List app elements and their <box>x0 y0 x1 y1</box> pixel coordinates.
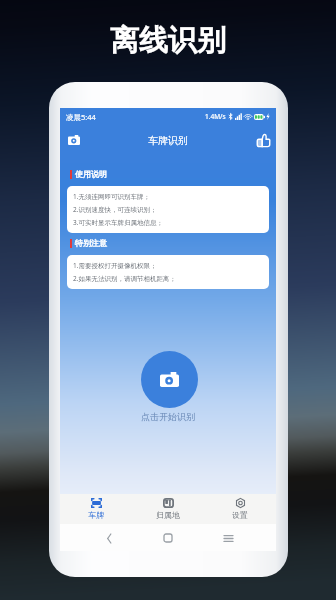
button[interactable]: Camera <box>63 129 85 151</box>
button[interactable]: 设置 <box>204 494 276 524</box>
button[interactable]: Recents <box>217 527 239 549</box>
staticText: 2.如果无法识别，请调节相机距离； <box>73 274 176 283</box>
staticText: 1.4M/s <box>205 112 226 121</box>
button[interactable]: Home <box>157 527 179 549</box>
staticText: 2.识别速度快，可连续识别； <box>73 205 157 214</box>
staticText: 使用说明 <box>75 169 107 179</box>
staticText: 特别注意 <box>75 238 107 248</box>
staticText: 凌晨5:44 <box>66 112 96 122</box>
button[interactable]: Like <box>252 129 274 151</box>
staticText: 1.需要授权打开摄像机权限； <box>73 261 157 270</box>
staticText: 3.可实时显示车牌归属地信息； <box>73 218 163 227</box>
staticText: 点击开始识别 <box>141 411 195 422</box>
button[interactable]: 归属地 <box>132 494 204 524</box>
staticText: 车牌 <box>88 510 104 520</box>
staticText: 归属地 <box>156 510 180 520</box>
button[interactable]: 车牌 <box>60 494 132 524</box>
button[interactable]: Start recognition <box>141 351 198 408</box>
staticText: 设置 <box>232 510 248 520</box>
staticText: 离线识别 <box>110 22 226 59</box>
staticText: 1.无须连网即可识别车牌； <box>73 192 150 201</box>
staticText: 车牌识别 <box>148 134 188 147</box>
button[interactable]: Back <box>98 527 120 549</box>
